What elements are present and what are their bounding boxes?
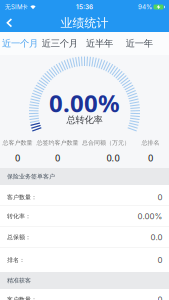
staticText: 总客户数量 — [2, 139, 32, 147]
staticText: 总合同额（万元） — [82, 139, 130, 147]
staticText: 0 — [55, 152, 60, 164]
staticText: 无SIM卡 — [5, 3, 28, 11]
staticText: 总保额： — [7, 233, 31, 241]
staticText: 转化率： — [7, 212, 31, 220]
staticText: 客户数量： — [7, 193, 37, 201]
button[interactable]: 近一个月 — [0, 32, 40, 55]
staticText: 0.00% — [137, 211, 162, 221]
staticText: 近一个月 — [2, 38, 38, 49]
staticText: 排名： — [7, 256, 25, 264]
staticText: 客户数量： — [7, 296, 37, 300]
button[interactable]: 近半年 — [79, 32, 119, 55]
staticText: 15:36 — [76, 3, 93, 11]
staticText: 0.00% — [49, 87, 120, 119]
staticText: 近三个月 — [42, 38, 78, 49]
staticText: 精准获客 — [7, 277, 31, 284]
staticText: 总排名 — [141, 139, 159, 147]
staticText: 0 — [157, 255, 162, 265]
staticText: 近半年 — [86, 38, 113, 49]
staticText: 总签约客户数量 — [36, 139, 78, 147]
staticText: 业绩统计 — [60, 16, 108, 30]
staticText: 94% — [138, 3, 152, 11]
button[interactable]: 近一年 — [119, 32, 159, 55]
button[interactable]: 近三个月 — [40, 32, 80, 55]
staticText: 0 — [157, 192, 162, 202]
staticText: 0 — [148, 152, 153, 164]
staticText: 0.0 — [106, 152, 119, 164]
staticText: 0 — [15, 152, 20, 164]
staticText: 保险业务签单客户 — [7, 173, 55, 180]
staticText: 总转化率 — [66, 114, 102, 126]
button[interactable]: 返回 — [0, 14, 19, 32]
staticText: 近一年 — [126, 38, 153, 49]
staticText: 0.0 — [150, 232, 162, 242]
staticText: 0 — [157, 295, 162, 300]
